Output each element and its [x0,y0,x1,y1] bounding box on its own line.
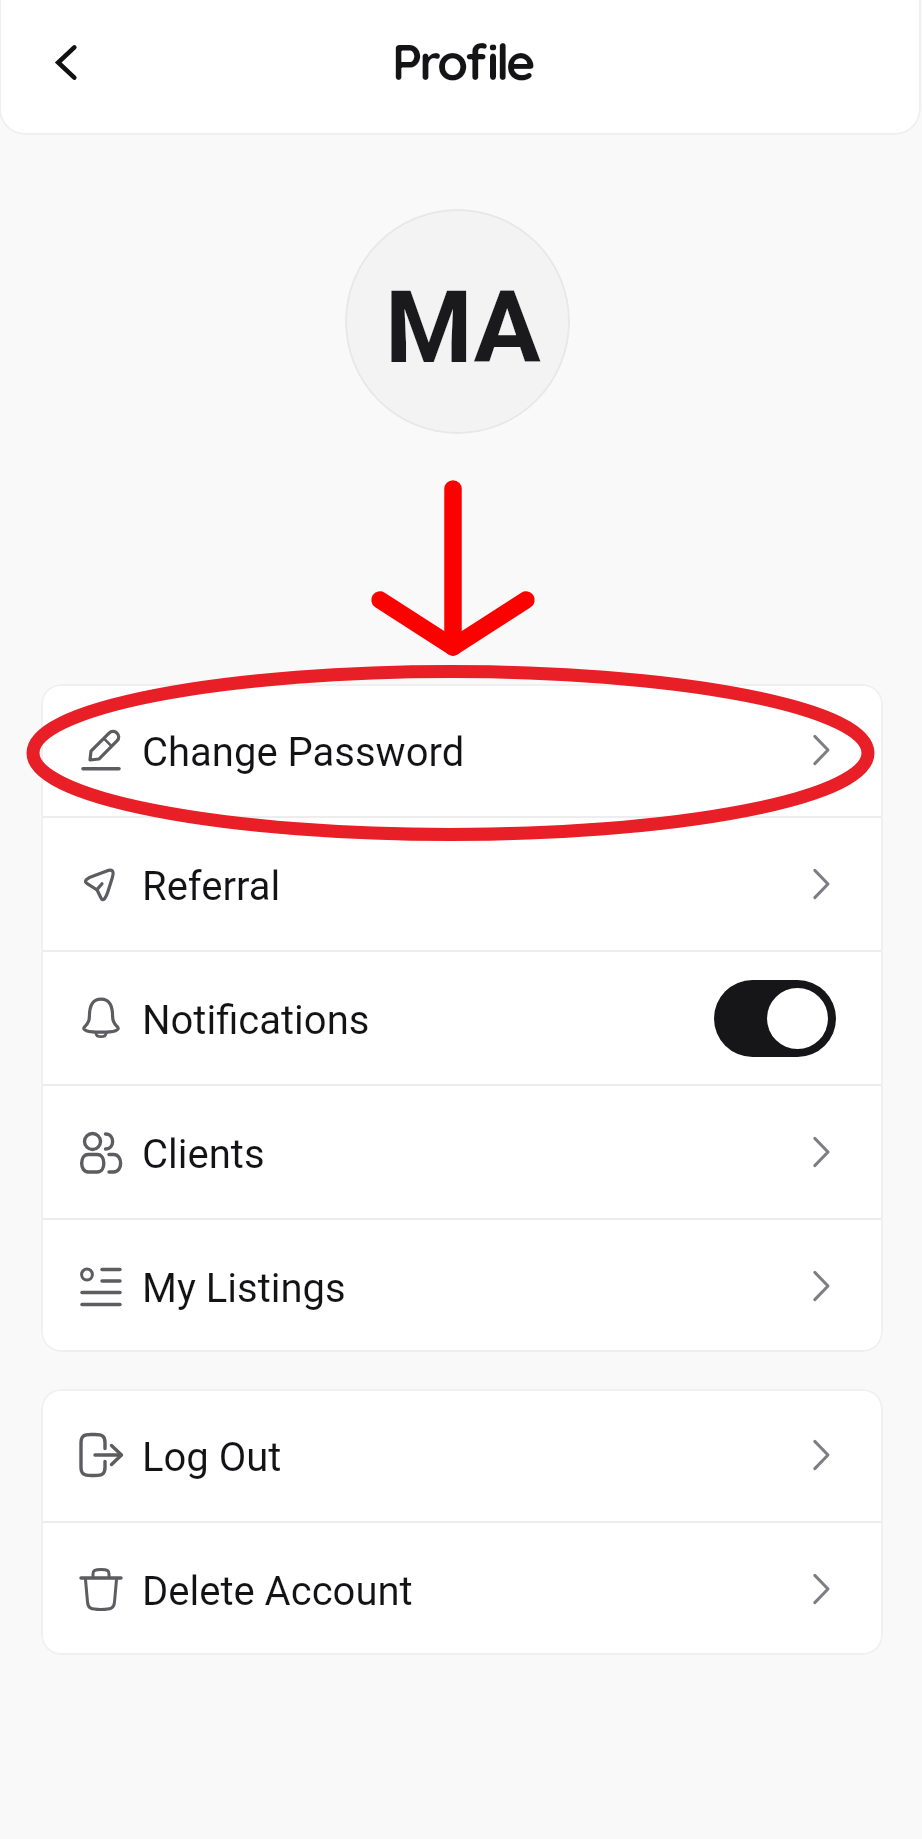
button[interactable]: Log Out [41,1389,883,1521]
staticText: Profile [392,30,533,93]
staticText: MA [385,269,541,386]
staticText: Log Out [142,1434,282,1481]
staticText: Notifications [142,997,370,1044]
staticText: My Listings [142,1265,346,1312]
button[interactable]: Notifications [41,952,883,1084]
button[interactable]: Referral [41,818,883,950]
button[interactable]: Notifications toggle [714,980,836,1057]
button[interactable]: Delete Account [41,1523,883,1655]
staticText: Change Password [142,729,465,776]
staticText: Delete Account [142,1568,413,1615]
button[interactable]: Back [26,22,106,102]
staticText: Clients [142,1131,265,1178]
button[interactable]: Change Password [41,684,883,816]
button[interactable]: My Listings [41,1220,883,1352]
staticText: Referral [142,863,281,910]
button[interactable]: Clients [41,1086,883,1218]
